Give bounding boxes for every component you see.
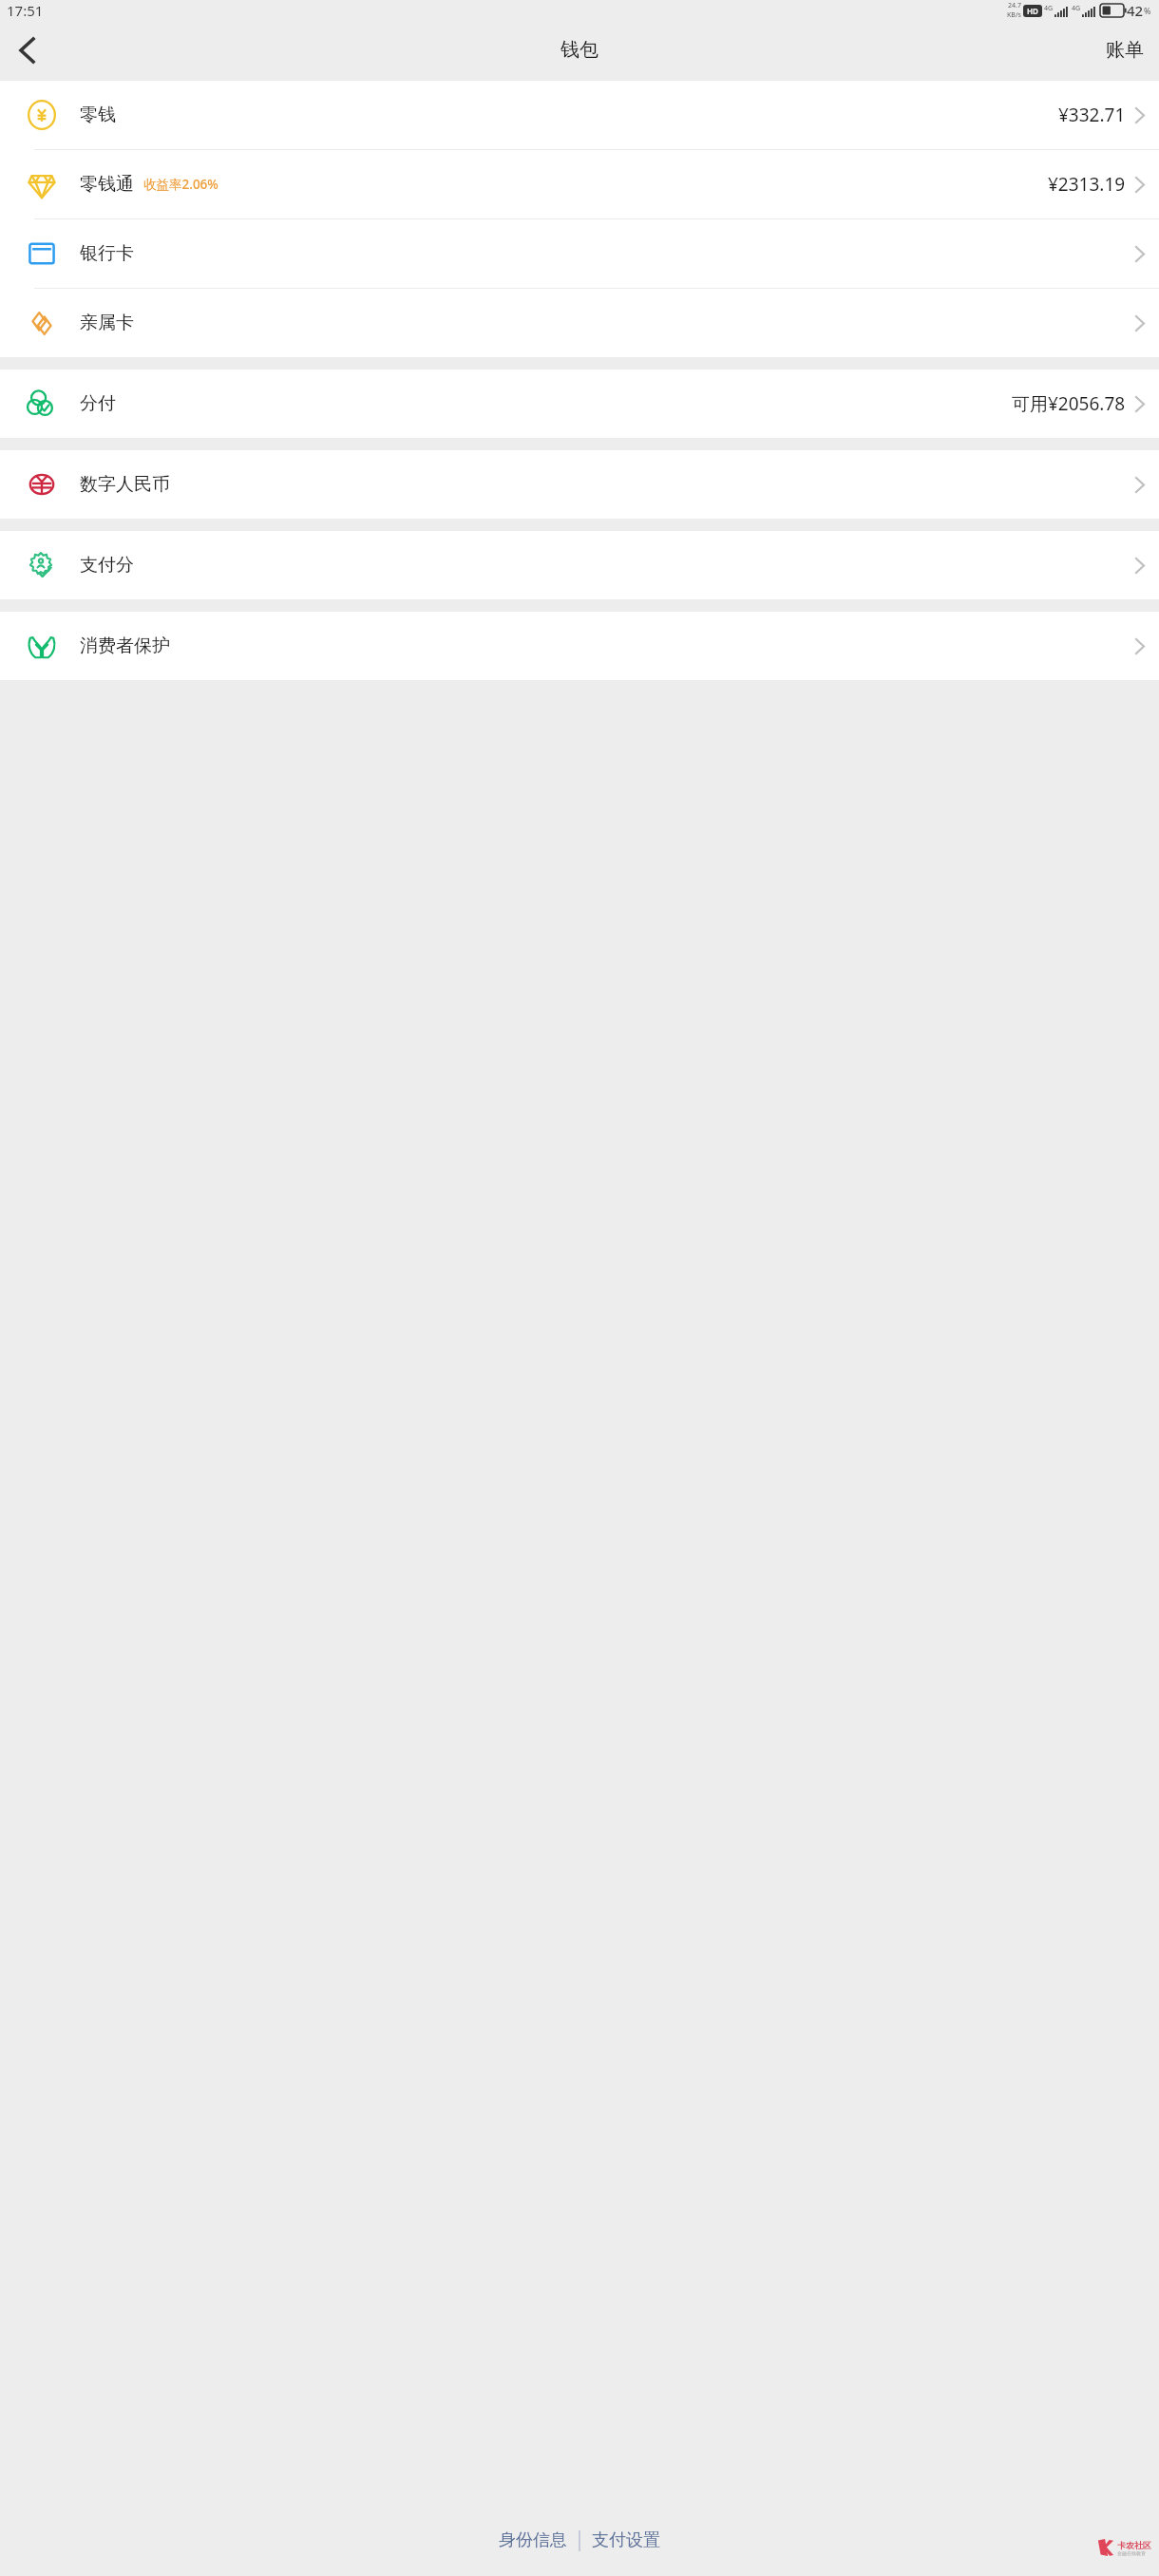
button[interactable]: 身份信息	[487, 2522, 579, 2559]
staticText: 4G	[1044, 4, 1054, 13]
staticText: 消费者保护	[80, 635, 170, 657]
staticText: 账单	[1106, 38, 1144, 62]
staticText: ¥2313.19	[1048, 172, 1126, 197]
button[interactable]: 亲属卡	[0, 289, 1159, 357]
button[interactable]: 消费者保护	[0, 612, 1159, 680]
staticText: 钱包	[560, 38, 598, 62]
staticText: 42	[1127, 1, 1144, 20]
staticText: 支付设置	[592, 2529, 660, 2551]
staticText: 身份信息	[499, 2529, 567, 2551]
button[interactable]: 银行卡	[0, 219, 1159, 288]
staticText: 金融在线教育	[1117, 2550, 1146, 2556]
staticText: 卡农社区	[1117, 2540, 1151, 2550]
staticText: HD	[1027, 6, 1038, 16]
button[interactable]: 零钱通	[0, 150, 1159, 218]
staticText: 可用¥2056.78	[1012, 391, 1126, 416]
staticText: 支付分	[80, 554, 134, 577]
button[interactable]: 账单	[1091, 28, 1159, 71]
button[interactable]: 支付分	[0, 531, 1159, 599]
staticText: 24.7	[1008, 1, 1021, 10]
staticText: KB/s	[1007, 10, 1021, 20]
staticText: 银行卡	[80, 242, 134, 265]
button[interactable]: 数字人民币	[0, 450, 1159, 519]
staticText: 零钱通	[80, 173, 134, 196]
staticText: 零钱	[80, 104, 116, 126]
button[interactable]: 支付设置	[580, 2522, 672, 2559]
staticText: 分付	[80, 392, 116, 415]
button[interactable]: 零钱	[0, 81, 1159, 149]
staticText: 亲属卡	[80, 312, 134, 334]
staticText: 收益率2.06%	[143, 176, 218, 193]
staticText: 4G	[1072, 4, 1081, 13]
staticText: 17:51	[7, 1, 44, 20]
button[interactable]: 分付	[0, 369, 1159, 438]
staticText: 数字人民币	[80, 473, 170, 496]
staticText: ¥332.71	[1058, 103, 1126, 127]
staticText: %	[1144, 5, 1151, 16]
button[interactable]: 返回	[0, 24, 53, 77]
